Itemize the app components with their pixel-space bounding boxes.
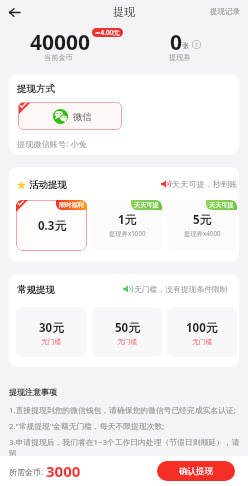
button[interactable]: 50元 [92, 307, 162, 357]
staticText: 确认提现 [179, 466, 213, 477]
staticText: 提现 [113, 5, 135, 19]
button[interactable]: 提现记录 [210, 7, 248, 16]
staticText: 提现记录 [210, 7, 240, 16]
staticText: 天天可提 [134, 201, 159, 209]
staticText: 0 [170, 28, 183, 57]
staticText: 限时福利 [59, 201, 84, 209]
staticText: ? [195, 41, 198, 49]
button[interactable]: 微信 [18, 102, 122, 130]
staticText: 提现券x1000 [109, 229, 146, 238]
staticText: 意你的微信消息; [9, 463, 66, 474]
staticText: 提现微信账号: 小兔 [17, 138, 87, 149]
staticText: 2."常规提现"金额无门槛，每天不限提现次数; [9, 421, 165, 432]
staticText: 提现券x4000 [184, 229, 221, 238]
button[interactable]: Back [5, 3, 23, 21]
staticText: 3.申请提现后，我们将在1~3个工作日内处理（节假日则顺延），请留 [9, 437, 243, 458]
staticText: 张 [182, 41, 189, 50]
button[interactable]: 确认提现 [157, 461, 235, 481]
staticText: 3000 [46, 461, 81, 481]
staticText: 常规提现 [17, 284, 55, 296]
button[interactable]: 30元 [16, 307, 87, 357]
staticText: 1.直接提现到您的微信钱包，请确保您的微信号已经完成实名认证; [9, 405, 236, 416]
staticText: 5元 [193, 212, 212, 228]
staticText: 0.3元 [38, 218, 66, 234]
staticText: 提现注意事项 [9, 387, 57, 397]
staticText: ≈4.00元 [95, 28, 120, 37]
staticText: 天天可提 [209, 201, 234, 209]
staticText: 无门槛 [41, 337, 62, 346]
staticText: 无门槛，没有提现条件限制 [134, 284, 228, 294]
staticText: 1元 [118, 212, 137, 228]
staticText: 100元 [186, 320, 218, 336]
button[interactable]: 100元 [167, 307, 237, 357]
staticText: 无门槛 [192, 337, 213, 346]
button[interactable]: 0.3元 [16, 200, 87, 251]
staticText: 50元 [115, 320, 140, 336]
button[interactable]: 1元 [92, 200, 162, 251]
staticText: 40000 [30, 28, 91, 57]
staticText: 活动提现 [29, 179, 67, 191]
button[interactable]: 5元 [167, 200, 237, 251]
staticText: 提现方式 [17, 83, 55, 95]
staticText: 所需金币: [9, 466, 44, 477]
staticText: 30元 [39, 320, 64, 336]
staticText: 微信 [73, 111, 92, 123]
staticText: 提现券 [169, 53, 191, 62]
staticText: 当前金币 [44, 53, 73, 62]
staticText: 无门槛 [117, 337, 138, 346]
staticText: 天天可提，秒到账 [172, 179, 238, 189]
